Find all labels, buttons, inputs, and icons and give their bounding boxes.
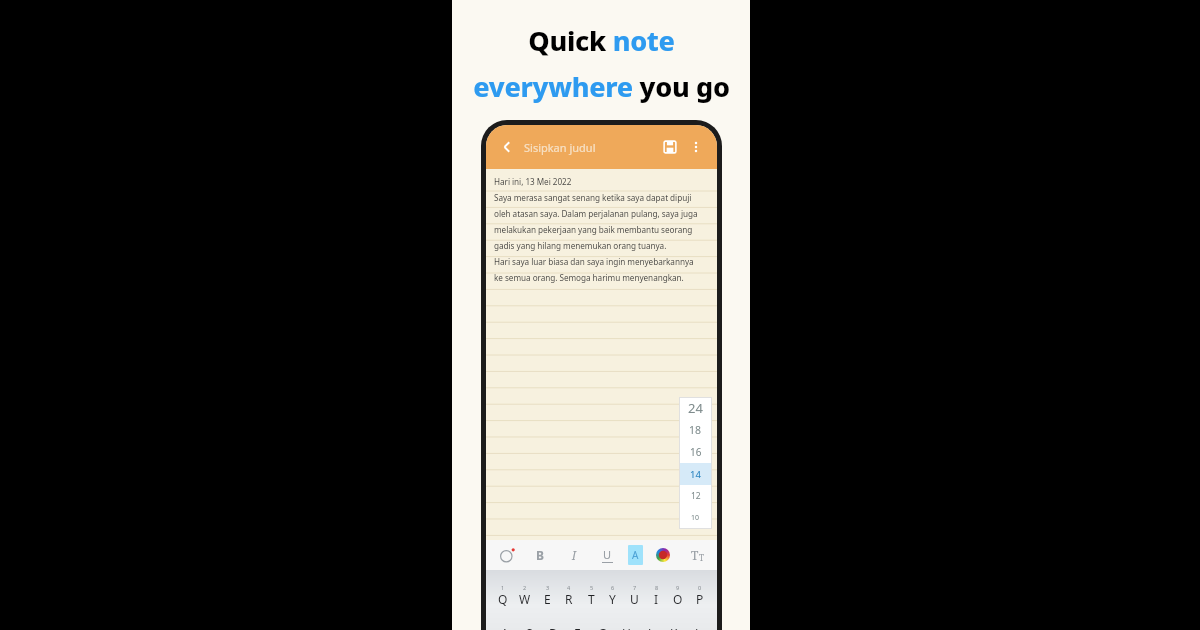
staticText: 18 [689, 423, 702, 437]
staticText: melakukan pekerjaan yang baik membantu s… [494, 224, 693, 235]
staticText: 12 [691, 490, 701, 502]
staticText: A [501, 625, 509, 630]
button[interactable]: 10 [679, 507, 712, 529]
staticText: 8 [655, 584, 659, 591]
staticText: H [622, 625, 631, 630]
staticText: O [673, 591, 683, 607]
staticText: 10 [691, 513, 700, 523]
staticText: Sisipkan judul [524, 140, 596, 155]
button[interactable]: Text colour [650, 542, 676, 568]
staticText: 5 [590, 584, 594, 591]
button[interactable]: Highlight [628, 545, 643, 565]
staticText: I [572, 547, 576, 563]
staticText: F [574, 625, 581, 630]
staticText: U [630, 591, 639, 607]
staticText: Hari ini, 13 Mei 2022 [494, 176, 572, 187]
button[interactable]: 1 [493, 584, 513, 607]
staticText: G [598, 625, 607, 630]
staticText: 1 [501, 584, 505, 591]
button[interactable]: Text size [684, 542, 710, 568]
staticText: T [699, 552, 704, 563]
staticText: P [696, 591, 704, 607]
button[interactable]: 8 [646, 584, 666, 607]
button[interactable]: Palette [494, 542, 520, 568]
staticText: 4 [567, 584, 571, 591]
staticText: oleh atasan saya. Dalam perjalanan pulan… [494, 208, 698, 219]
staticText: 3 [546, 584, 550, 591]
staticText: E [544, 591, 551, 607]
staticText: Q [498, 591, 508, 607]
button[interactable]: S [519, 625, 539, 630]
button[interactable]: Save [658, 135, 682, 159]
button[interactable]: Italic [561, 542, 587, 568]
button[interactable]: 4 [559, 584, 579, 607]
staticText: B [536, 547, 544, 563]
staticText: Y [609, 591, 616, 607]
button[interactable]: Bold [527, 542, 553, 568]
staticText: L [695, 625, 702, 630]
staticText: 6 [611, 584, 615, 591]
staticText: T [691, 547, 699, 563]
button[interactable]: A [495, 625, 515, 630]
button[interactable]: L [688, 625, 708, 630]
button[interactable]: F [567, 625, 587, 630]
staticText: W [519, 591, 531, 607]
button[interactable]: 3 [537, 584, 557, 607]
button[interactable]: 16 [679, 441, 712, 463]
staticText: everywhere you go [473, 68, 730, 105]
staticText: Saya merasa sangat senang ketika saya da… [494, 192, 692, 203]
staticText: J [648, 625, 652, 630]
button[interactable]: 0 [690, 584, 710, 607]
staticText: 2 [523, 584, 527, 591]
staticText: ke semua orang. Semoga harimu menyenangk… [494, 272, 684, 283]
staticText: 14 [690, 468, 701, 481]
button[interactable]: 2 [515, 584, 535, 607]
button[interactable]: K [664, 625, 684, 630]
staticText: K [670, 625, 678, 630]
staticText: U [603, 547, 612, 562]
button[interactable]: 7 [624, 584, 644, 607]
button[interactable]: 18 [679, 419, 712, 441]
button[interactable]: 14 [679, 463, 712, 485]
button[interactable]: 5 [581, 584, 601, 607]
staticText: S [526, 625, 533, 630]
button[interactable]: D [543, 625, 563, 630]
staticText: 7 [633, 584, 637, 591]
staticText: R [565, 591, 573, 607]
staticText: 9 [676, 584, 680, 591]
button[interactable]: 9 [668, 584, 688, 607]
staticText: A [632, 548, 639, 562]
staticText: Hari saya luar biasa dan saya ingin meny… [494, 256, 694, 267]
button[interactable]: 24 [679, 397, 712, 419]
staticText: 16 [690, 445, 702, 459]
staticText: I [654, 591, 659, 607]
staticText: 0 [698, 584, 702, 591]
button[interactable]: Underline [594, 542, 620, 568]
staticText: T [588, 591, 595, 607]
button[interactable]: More options [685, 136, 707, 158]
button[interactable]: 12 [679, 485, 712, 507]
button[interactable]: J [640, 625, 660, 630]
button[interactable]: G [592, 625, 612, 630]
staticText: 24 [688, 399, 703, 417]
staticText: Quick note [528, 22, 675, 59]
button[interactable]: 6 [602, 584, 622, 607]
button[interactable]: Back [496, 136, 518, 158]
staticText: gadis yang hilang menemukan orang tuanya… [494, 240, 667, 251]
button[interactable]: H [616, 625, 636, 630]
staticText: D [549, 625, 558, 630]
